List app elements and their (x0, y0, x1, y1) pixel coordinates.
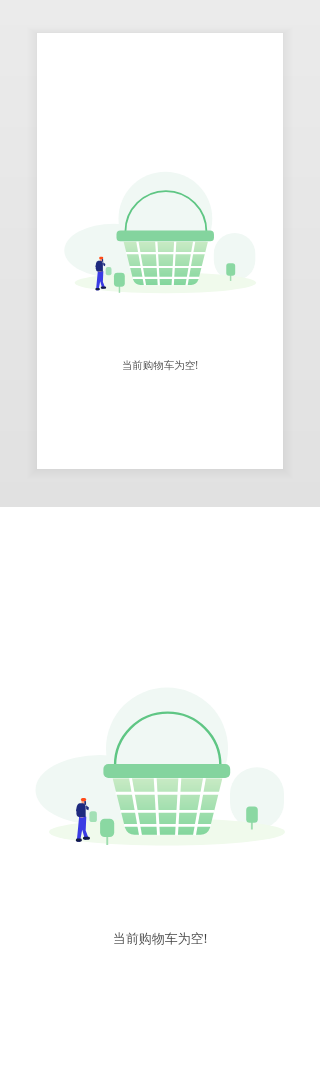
staticText: 当前购物车为空! (0, 929, 320, 947)
staticText: 当前购物车为空! (0, 358, 320, 372)
